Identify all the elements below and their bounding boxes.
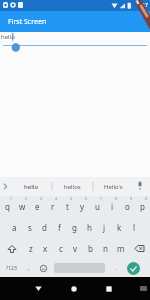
- staticText: y: [80, 201, 85, 212]
- staticText: x: [43, 243, 48, 254]
- staticText: 4: [55, 196, 58, 201]
- staticText: ,: [28, 264, 30, 272]
- button[interactable]: o: [120, 196, 135, 217]
- button[interactable]: [123, 259, 143, 277]
- staticText: s: [28, 222, 32, 233]
- staticText: w: [19, 201, 26, 212]
- button[interactable]: hello: [0, 32, 150, 177]
- button[interactable]: [56, 277, 91, 300]
- button[interactable]: z: [23, 238, 38, 259]
- button[interactable]: [128, 238, 150, 259]
- staticText: d: [42, 222, 47, 233]
- staticText: ?123: [6, 265, 17, 272]
- button[interactable]: p: [135, 196, 150, 217]
- staticText: f: [58, 222, 61, 233]
- staticText: 8: [115, 196, 118, 201]
- button[interactable]: ?123: [0, 259, 23, 277]
- button[interactable]: [0, 238, 23, 259]
- button[interactable]: x: [38, 238, 53, 259]
- button[interactable]: a: [7, 217, 22, 238]
- button[interactable]: b: [83, 238, 98, 259]
- button[interactable]: u: [90, 196, 105, 217]
- button[interactable]: [20, 277, 56, 300]
- button[interactable]: [91, 277, 126, 300]
- staticText: 2: [25, 196, 28, 201]
- button[interactable]: hellos: [52, 177, 93, 196]
- button[interactable]: c: [53, 238, 68, 259]
- staticText: q: [5, 201, 10, 212]
- staticText: 1: [10, 196, 13, 201]
- button[interactable]: y: [75, 196, 90, 217]
- button[interactable]: g: [67, 217, 82, 238]
- button[interactable]: l: [127, 217, 142, 238]
- button[interactable]: r: [45, 196, 60, 217]
- staticText: o: [125, 201, 130, 212]
- staticText: v: [73, 243, 78, 254]
- button[interactable]: h: [82, 217, 97, 238]
- button[interactable]: s: [22, 217, 37, 238]
- staticText: 9: [130, 196, 133, 201]
- staticText: Hello's: [104, 183, 123, 191]
- button[interactable]: e: [30, 196, 45, 217]
- button[interactable]: m: [113, 238, 128, 259]
- staticText: l: [133, 222, 136, 233]
- staticText: i: [111, 201, 114, 212]
- button[interactable]: k: [112, 217, 127, 238]
- staticText: 3: [40, 196, 43, 201]
- staticText: 5: [70, 196, 73, 201]
- staticText: r: [51, 201, 55, 212]
- staticText: 6: [85, 196, 88, 201]
- staticText: .: [115, 264, 117, 272]
- staticText: a: [12, 222, 17, 233]
- staticText: j: [103, 222, 106, 233]
- button[interactable]: t: [60, 196, 75, 217]
- staticText: z: [29, 243, 33, 254]
- staticText: g: [72, 222, 77, 233]
- staticText: u: [95, 201, 100, 212]
- staticText: First Screen: [8, 17, 47, 27]
- button[interactable]: Hello's: [93, 177, 134, 196]
- button[interactable]: w: [15, 196, 30, 217]
- staticText: m: [117, 243, 125, 254]
- staticText: hellos: [64, 183, 81, 191]
- staticText: h: [87, 222, 92, 233]
- staticText: 6:17: [138, 2, 148, 9]
- staticText: p: [140, 201, 145, 212]
- button[interactable]: [51, 259, 108, 277]
- button[interactable]: j: [97, 217, 112, 238]
- staticText: t: [66, 201, 69, 212]
- button[interactable]: [35, 259, 51, 277]
- staticText: e: [35, 201, 40, 212]
- button[interactable]: i: [105, 196, 120, 217]
- staticText: 7: [100, 196, 103, 201]
- button[interactable]: ,: [23, 259, 35, 277]
- staticText: k: [117, 222, 122, 233]
- button[interactable]: n: [98, 238, 113, 259]
- button[interactable]: q: [0, 196, 15, 217]
- staticText: 0: [145, 196, 148, 201]
- staticText: b: [88, 243, 93, 254]
- button[interactable]: v: [68, 238, 83, 259]
- staticText: c: [59, 243, 63, 254]
- button[interactable]: .: [108, 259, 123, 277]
- staticText: n: [103, 243, 108, 254]
- button[interactable]: d: [37, 217, 52, 238]
- staticText: hello: [1, 33, 15, 41]
- button[interactable]: f: [52, 217, 67, 238]
- staticText: hello: [24, 183, 39, 191]
- button[interactable]: hello: [0, 177, 52, 196]
